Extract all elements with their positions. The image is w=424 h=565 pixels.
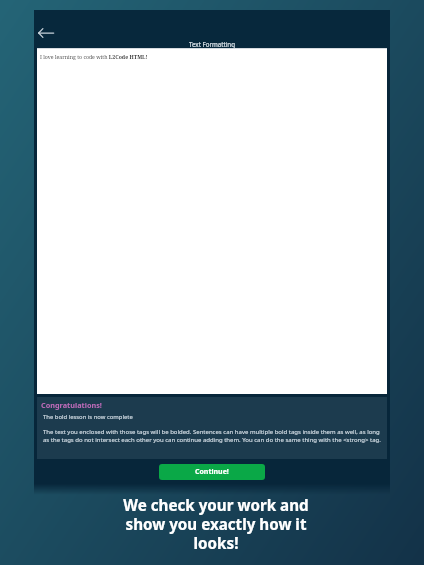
staticText: We check your work and show you exactly … (106, 495, 326, 553)
button[interactable]: Continue! (159, 464, 265, 480)
staticText: Text Formatting (189, 40, 235, 48)
staticText: The text you enclosed with those tags wi… (43, 428, 381, 444)
staticText: Continue! (195, 467, 229, 477)
button[interactable]: Back (34, 22, 58, 40)
staticText: I love learning to code with L2Code HTML… (40, 53, 148, 60)
staticText: The bold lesson is now complete (43, 413, 133, 421)
staticText: Congratulations! (41, 400, 102, 410)
